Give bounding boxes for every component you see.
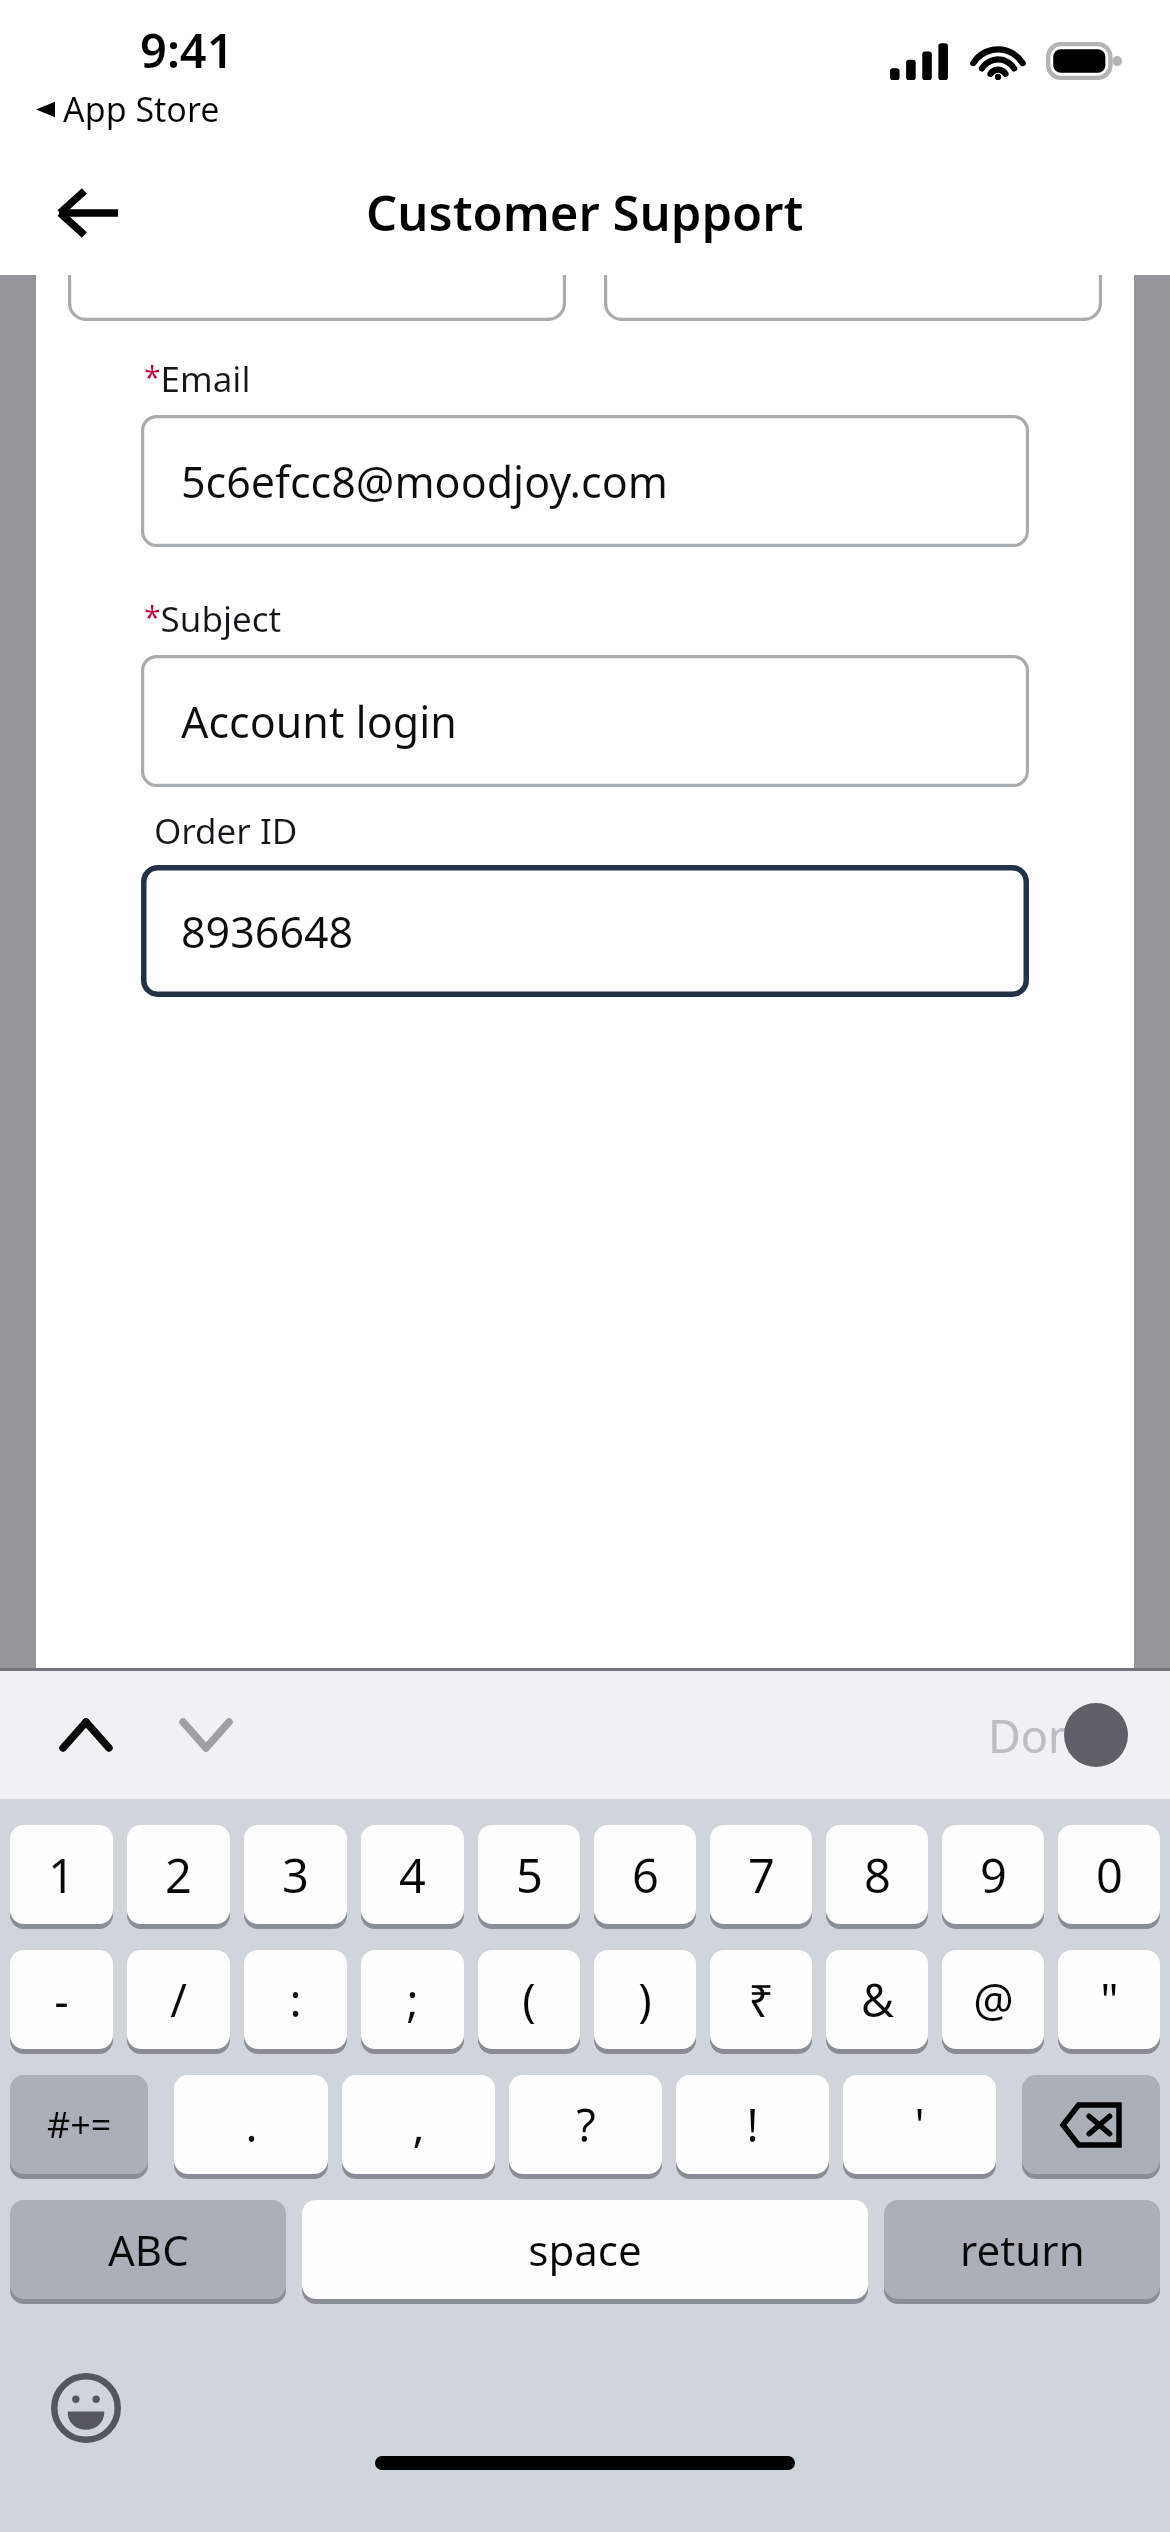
staticText: ?	[576, 2094, 596, 2155]
button[interactable]: #+=	[10, 2075, 148, 2174]
staticText: return	[960, 2221, 1085, 2278]
staticText: ₹	[748, 1969, 774, 2030]
button[interactable]: return	[884, 2200, 1160, 2299]
staticText: !	[746, 2094, 759, 2155]
button[interactable]: 5	[478, 1825, 580, 1924]
staticText: 3	[282, 1843, 309, 1907]
button[interactable]: ₹	[710, 1950, 812, 2049]
staticText: "	[1100, 1969, 1119, 2030]
button[interactable]: .	[174, 2075, 328, 2174]
staticText: *Subject	[144, 595, 282, 643]
staticText: Account login	[181, 692, 457, 751]
staticText: ,	[412, 2094, 425, 2155]
staticText: 9:41	[140, 18, 234, 82]
staticText: .	[245, 2094, 258, 2155]
staticText: /	[170, 1969, 187, 2030]
staticText: 9	[980, 1843, 1007, 1907]
staticText: ABC	[108, 2221, 189, 2278]
button[interactable]: Account login	[141, 655, 1029, 787]
staticText: '	[914, 2094, 925, 2155]
staticText: 2	[165, 1843, 192, 1907]
button[interactable]: 1	[10, 1825, 113, 1924]
staticText: *Email	[144, 355, 251, 403]
button[interactable]: @	[942, 1950, 1044, 2049]
button[interactable]: 2	[127, 1825, 230, 1924]
staticText: (	[522, 1969, 536, 2030]
button[interactable]: Emoji keyboard	[48, 2370, 124, 2446]
button[interactable]: !	[676, 2075, 829, 2174]
button[interactable]: '	[843, 2075, 996, 2174]
staticText: space	[528, 2221, 642, 2278]
button[interactable]: -	[10, 1950, 113, 2049]
staticText: :	[289, 1969, 302, 2030]
staticText: App Store	[63, 86, 220, 132]
button[interactable]: Previous field	[42, 1691, 130, 1779]
button[interactable]: "	[1058, 1950, 1160, 2049]
button[interactable]: )	[594, 1950, 696, 2049]
button[interactable]: /	[127, 1950, 230, 2049]
button[interactable]: ?	[509, 2075, 662, 2174]
staticText: )	[638, 1969, 652, 2030]
staticText: #+=	[47, 2100, 112, 2149]
staticText: 5c6efcc8@moodjoy.com	[181, 452, 668, 511]
button[interactable]: Back	[40, 165, 136, 261]
button[interactable]: &	[826, 1950, 928, 2049]
staticText: 7	[748, 1843, 775, 1907]
staticText: 0	[1096, 1843, 1123, 1907]
button[interactable]: space	[302, 2200, 868, 2299]
staticText: 6	[632, 1843, 659, 1907]
staticText: Customer Support	[366, 179, 804, 246]
button[interactable]: 6	[594, 1825, 696, 1924]
staticText: 5	[516, 1843, 543, 1907]
staticText: -	[54, 1969, 69, 2030]
button[interactable]: Next field	[162, 1691, 250, 1779]
button[interactable]: 4	[361, 1825, 464, 1924]
button[interactable]: Done	[950, 1691, 1140, 1779]
button[interactable]: 3	[244, 1825, 347, 1924]
staticText: 1	[48, 1843, 75, 1907]
button[interactable]: 5c6efcc8@moodjoy.com	[141, 415, 1029, 547]
staticText: 8936648	[181, 902, 354, 961]
staticText: 8	[864, 1843, 891, 1907]
button[interactable]: 0	[1058, 1825, 1160, 1924]
staticText: &	[861, 1969, 894, 2030]
staticText: Done	[988, 1705, 1102, 1766]
button[interactable]: (	[478, 1950, 580, 2049]
button[interactable]: 8	[826, 1825, 928, 1924]
button[interactable]: 9	[942, 1825, 1044, 1924]
button[interactable]: 8936648	[141, 865, 1029, 997]
staticText: Order ID	[154, 807, 298, 855]
button[interactable]: :	[244, 1950, 347, 2049]
button[interactable]: Backspace	[1022, 2075, 1160, 2174]
button[interactable]: ;	[361, 1950, 464, 2049]
staticText: 4	[399, 1843, 426, 1907]
staticText: ;	[406, 1969, 419, 2030]
staticText: @	[973, 1969, 1014, 2030]
button[interactable]: ABC	[10, 2200, 286, 2299]
button[interactable]: ,	[342, 2075, 495, 2174]
button[interactable]: 7	[710, 1825, 812, 1924]
